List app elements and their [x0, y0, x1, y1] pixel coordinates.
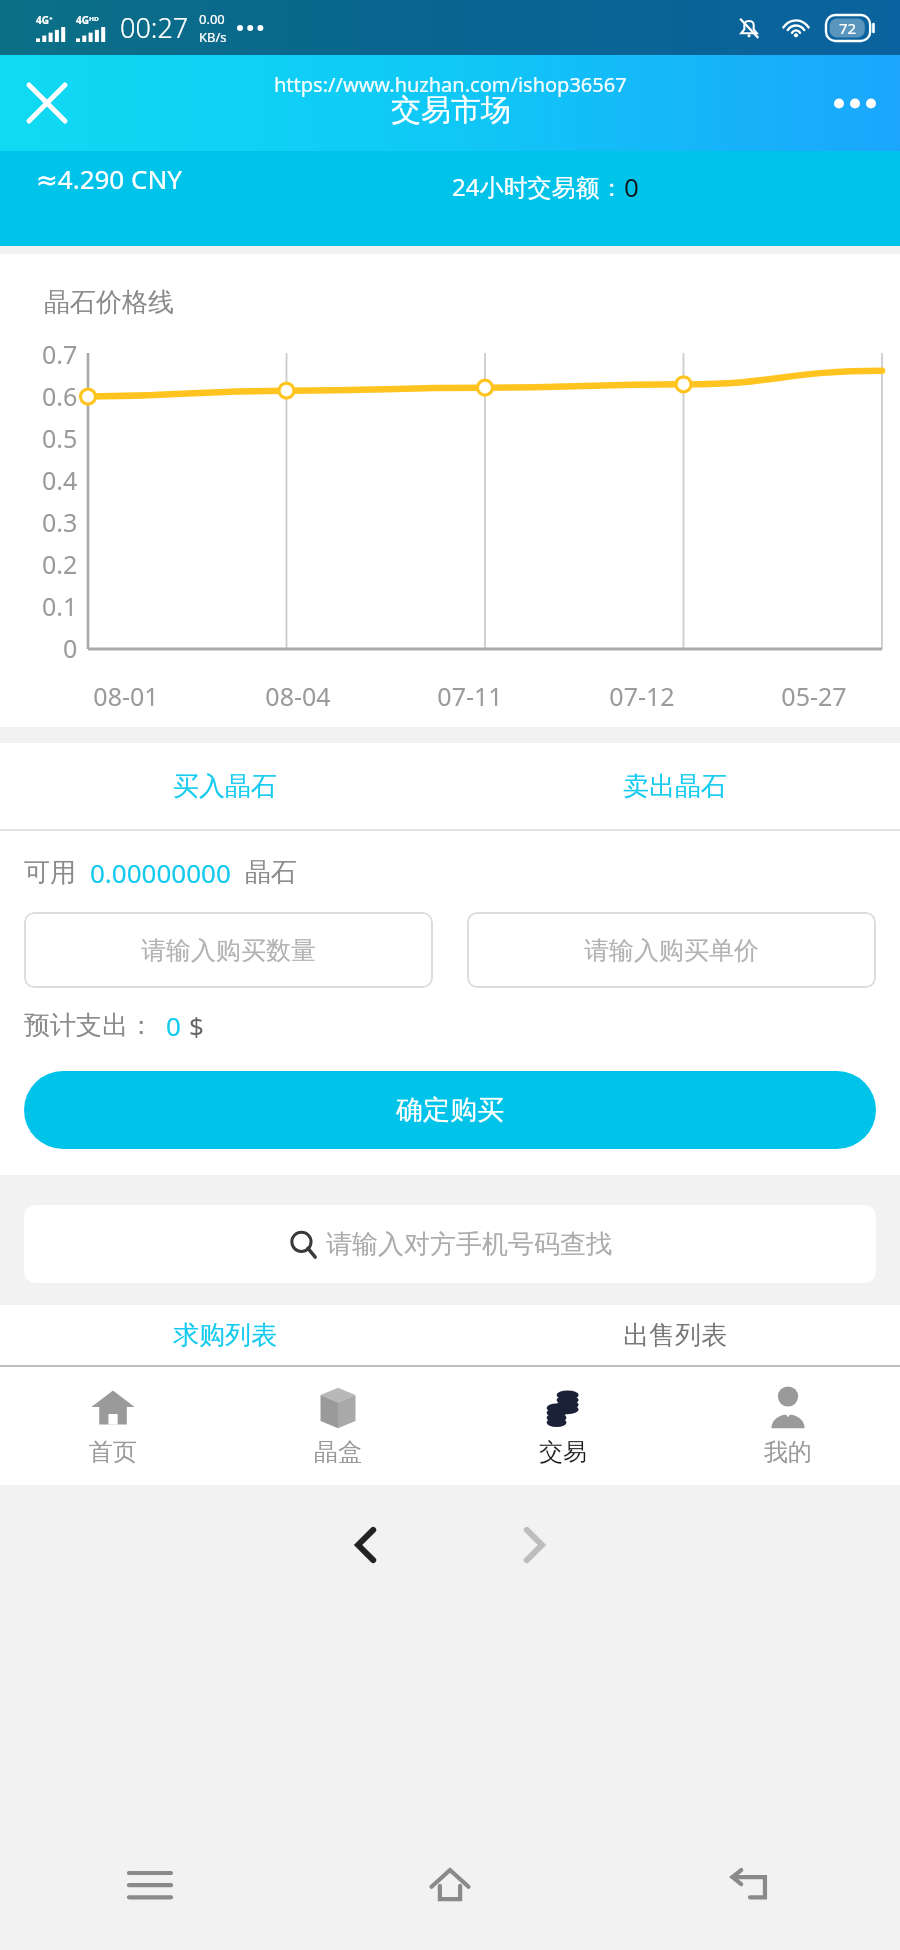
staticText: 0.5	[42, 421, 78, 455]
button[interactable]: 晶盒	[225, 1367, 450, 1485]
staticText: 预计支出：	[24, 1009, 154, 1042]
staticText: 交易市场	[391, 91, 511, 129]
button[interactable]: 请输入购买数量	[24, 912, 433, 988]
staticText: 0.1	[42, 589, 78, 623]
staticText: 08-04	[265, 679, 331, 713]
staticText: 4G⁺	[36, 13, 53, 27]
staticText: 首页	[89, 1437, 137, 1467]
staticText: 0.4	[42, 463, 78, 497]
staticText: https://www.huzhan.com/ishop36567	[274, 71, 627, 98]
staticText: 可用	[24, 856, 76, 889]
button[interactable]: 确定购买	[24, 1071, 876, 1149]
staticText: 24小时交易额：	[452, 170, 624, 203]
staticText: 求购列表	[173, 1319, 277, 1352]
button[interactable]: 求购列表	[0, 1305, 450, 1365]
button[interactable]: 卖出晶石	[450, 743, 900, 829]
staticText: 0.00000000	[90, 855, 231, 890]
staticText: 07-11	[437, 679, 503, 713]
staticText: 0.3	[42, 505, 78, 539]
button[interactable]: 首页	[0, 1367, 225, 1485]
button[interactable]: More options	[820, 71, 884, 135]
staticText: 晶石价格线	[44, 286, 174, 319]
staticText: 请输入购买数量	[141, 935, 316, 966]
staticText: 08-01	[93, 679, 159, 713]
button[interactable]: Next page	[488, 1499, 580, 1591]
button[interactable]: Previous page	[320, 1499, 412, 1591]
staticText: 4Gᴴᴰ	[76, 13, 99, 27]
staticText: $	[189, 1008, 204, 1043]
staticText: 出售列表	[623, 1319, 727, 1352]
staticText: 0	[166, 1008, 181, 1043]
button[interactable]: Home	[300, 1820, 600, 1950]
button[interactable]: 交易	[450, 1367, 675, 1485]
staticText: 请输入购买单价	[584, 935, 759, 966]
staticText: 0.7	[42, 337, 78, 371]
staticText: 卖出晶石	[623, 770, 727, 803]
button[interactable]: 买入晶石	[0, 743, 450, 829]
staticText: 0	[63, 631, 78, 665]
staticText: 0.00	[199, 10, 225, 28]
button[interactable]: Back	[600, 1820, 900, 1950]
staticText: 00:27	[120, 9, 189, 46]
button[interactable]: 请输入购买单价	[467, 912, 876, 988]
staticText: 晶盒	[314, 1437, 362, 1467]
staticText: 我的	[764, 1437, 812, 1467]
staticText: ≈4.290 CNY	[36, 161, 182, 196]
staticText: 晶石	[245, 856, 297, 889]
staticText: 0	[624, 169, 639, 204]
button[interactable]: 请输入对方手机号码查找	[24, 1205, 876, 1283]
staticText: KB/s	[199, 28, 227, 46]
staticText: 交易	[539, 1437, 587, 1467]
staticText: 0.2	[42, 547, 78, 581]
button[interactable]: Close	[12, 68, 82, 138]
button[interactable]: 我的	[675, 1367, 900, 1485]
staticText: 0.6	[42, 379, 78, 413]
staticText: 买入晶石	[173, 770, 277, 803]
staticText: 确定购买	[396, 1093, 504, 1127]
button[interactable]: Recent apps	[0, 1820, 300, 1950]
staticText: 05-27	[781, 679, 847, 713]
button[interactable]: 出售列表	[450, 1305, 900, 1365]
staticText: 72	[839, 18, 857, 38]
staticText: 07-12	[609, 679, 675, 713]
staticText: 请输入对方手机号码查找	[326, 1228, 612, 1261]
